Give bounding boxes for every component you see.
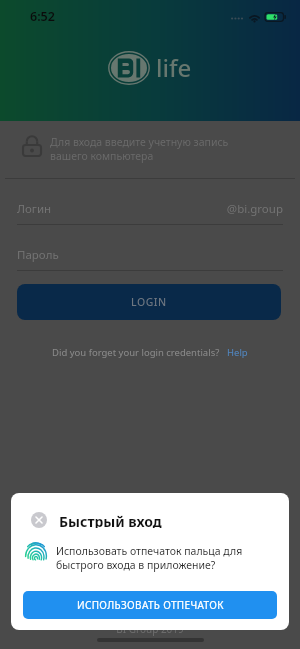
staticText: 6:52 <box>30 8 55 25</box>
staticText: Для входа введите учетную запись вашего … <box>50 135 229 163</box>
button[interactable]: LOGIN <box>17 284 281 320</box>
staticText: ИСПОЛЬЗОВАТЬ ОТПЕЧАТОК <box>77 598 224 612</box>
staticText: Быстрый вход <box>59 512 162 528</box>
staticText: LOGIN <box>131 295 167 309</box>
staticText: Help <box>227 346 248 359</box>
staticText: BI Group 2019 <box>0 622 300 636</box>
staticText: life <box>156 51 192 84</box>
button[interactable]: Close dialog <box>31 512 47 528</box>
staticText: Логин <box>17 201 52 217</box>
staticText: @bi.group <box>0 201 283 217</box>
button[interactable]: Help <box>227 346 248 359</box>
staticText: Пароль <box>17 247 59 263</box>
button[interactable]: ИСПОЛЬЗОВАТЬ ОТПЕЧАТОК <box>23 591 277 619</box>
staticText: Использовать отпечаток пальца для быстро… <box>56 544 243 572</box>
staticText: Did you forget your login credentials? <box>52 346 220 359</box>
